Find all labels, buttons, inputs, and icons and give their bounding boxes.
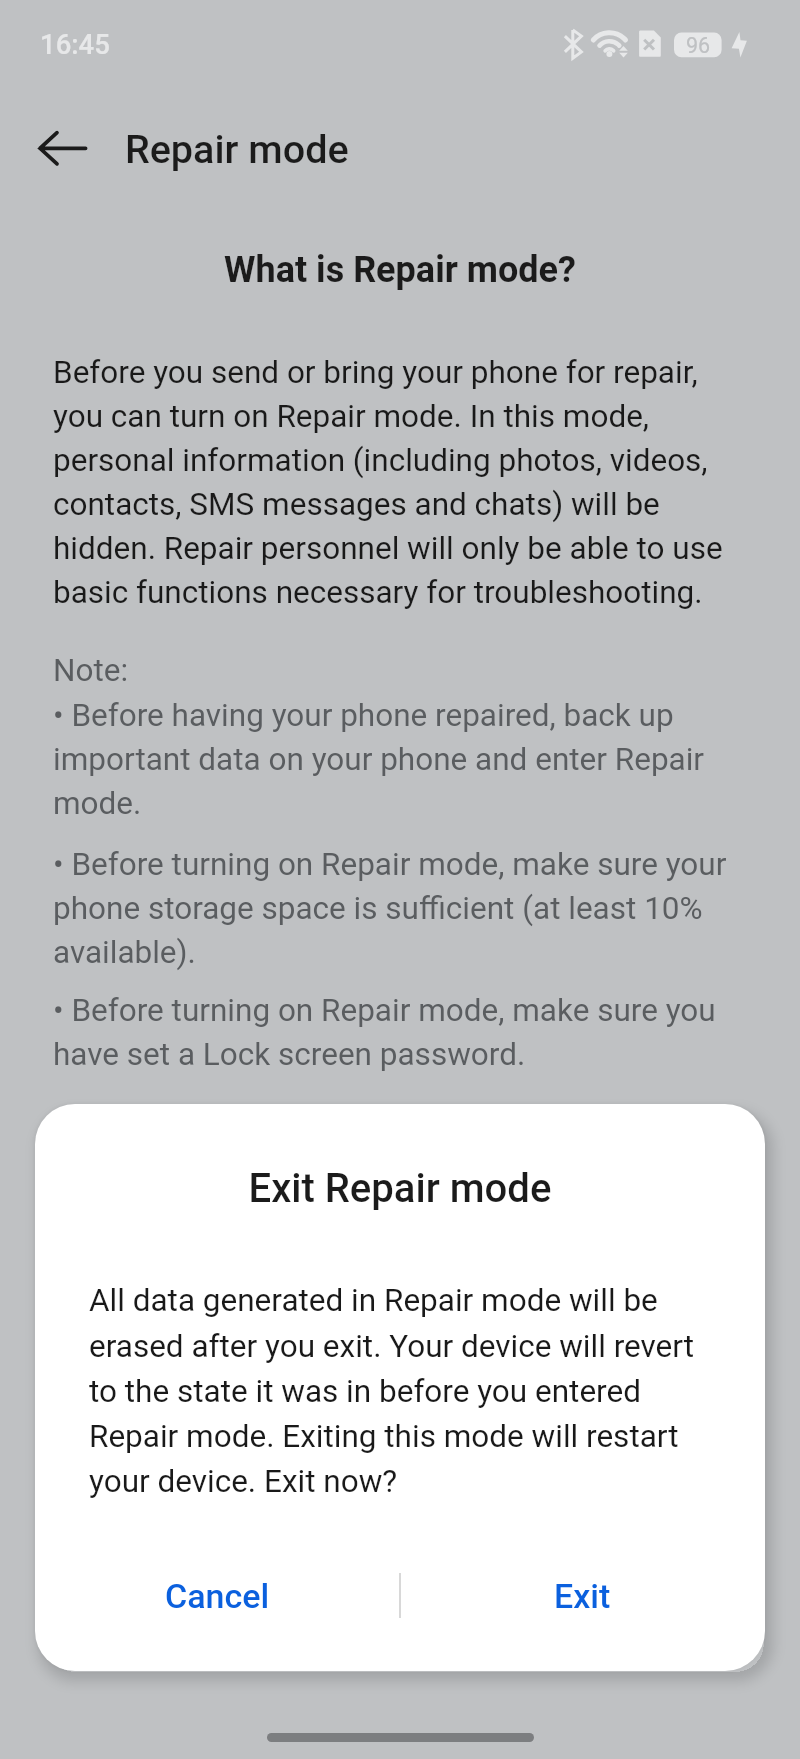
- staticText: Repair mode: [125, 126, 349, 172]
- staticText: • Before having your phone repaired, bac…: [53, 697, 741, 822]
- staticText: Cancel: [165, 1576, 270, 1616]
- button[interactable]: Back: [14, 112, 110, 184]
- staticText: • Before turning on Repair mode, make su…: [53, 846, 741, 971]
- staticText: All data generated in Repair mode will b…: [89, 1282, 709, 1499]
- button[interactable]: Exit: [400, 1541, 765, 1671]
- staticText: 16:45: [40, 28, 110, 60]
- staticText: Exit Repair mode: [35, 1165, 765, 1212]
- staticText: Exit: [554, 1576, 611, 1616]
- button[interactable]: Cancel: [35, 1541, 400, 1671]
- staticText: What is Repair mode?: [0, 249, 800, 291]
- staticText: • Before turning on Repair mode, make su…: [53, 992, 741, 1073]
- staticText: Note:: [53, 652, 129, 689]
- staticText: Before you send or bring your phone for …: [53, 354, 741, 611]
- staticText: 96: [686, 33, 711, 58]
